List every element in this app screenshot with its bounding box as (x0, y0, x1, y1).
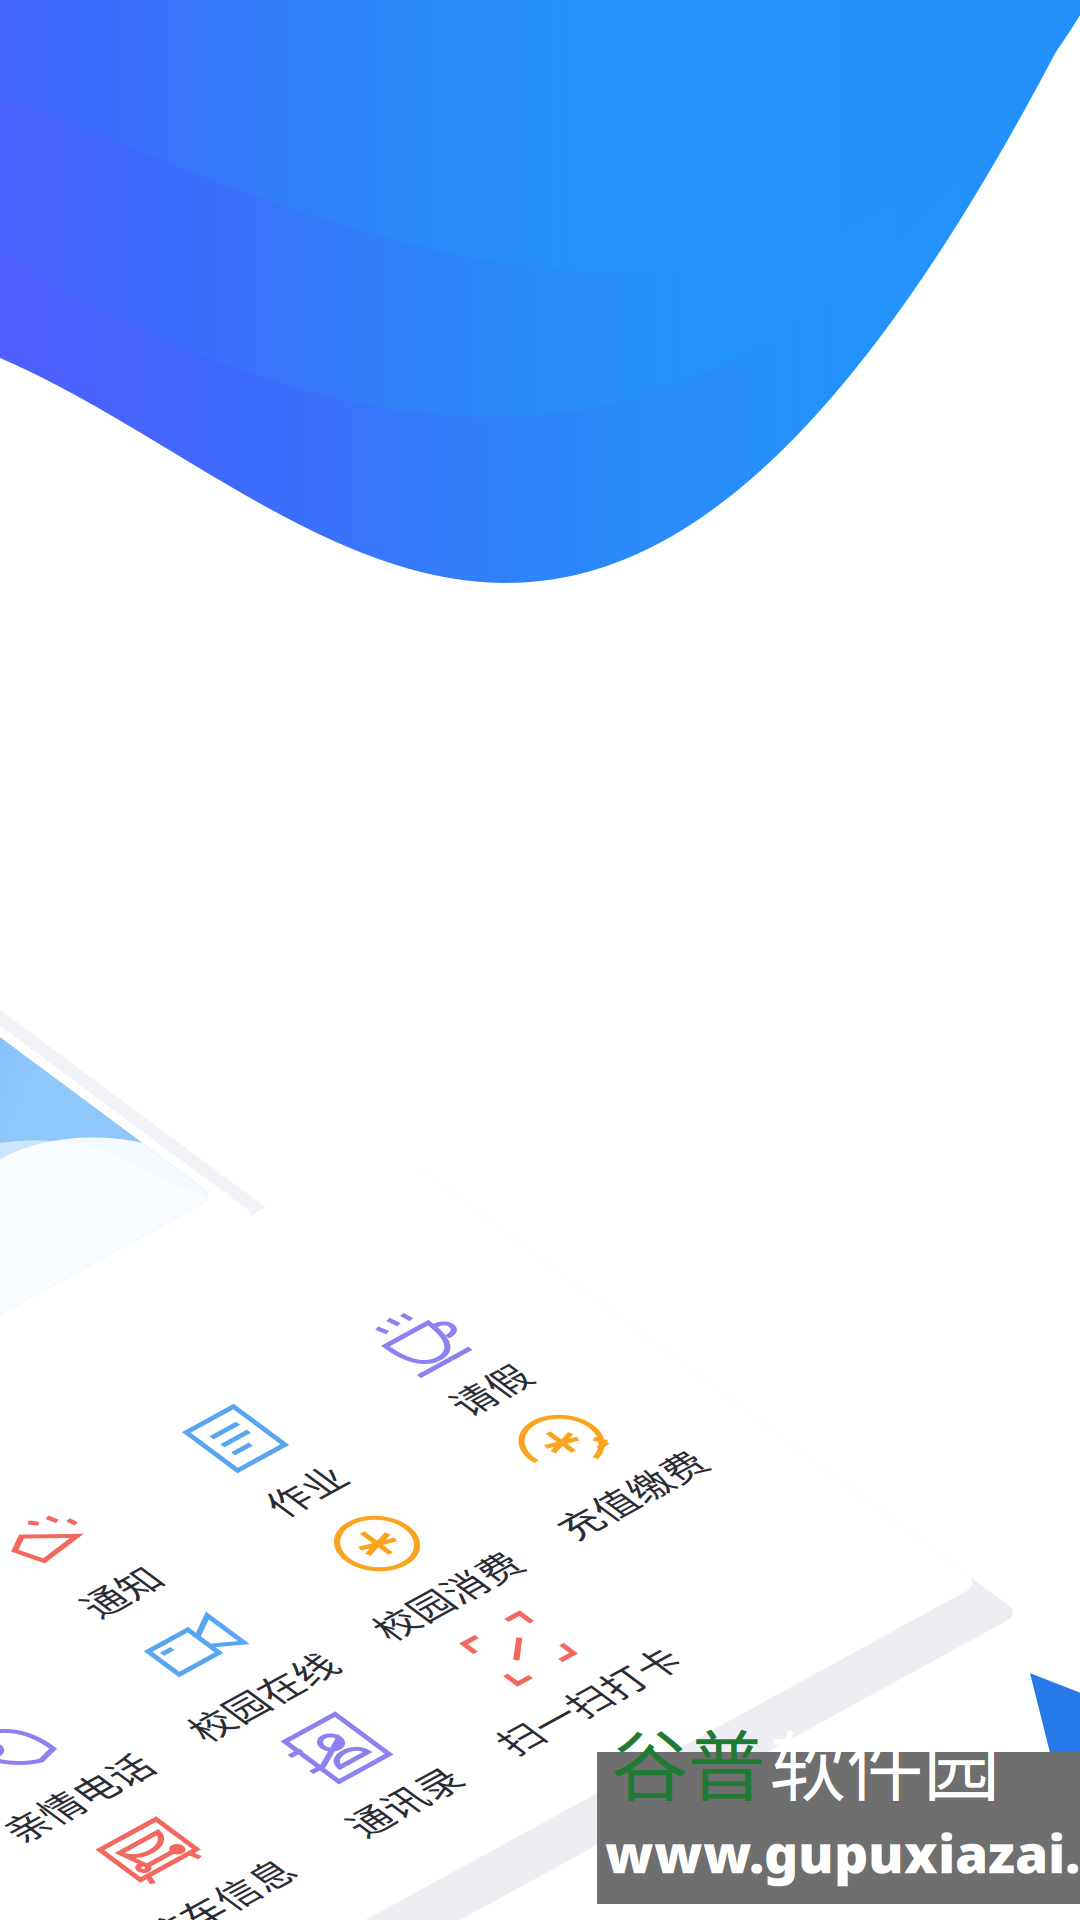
button[interactable]: 亲情电话 (0, 176, 210, 352)
button[interactable]: 通知 (210, 0, 420, 176)
staticText: www.gupuxiazai.com (605, 1817, 1080, 1920)
staticText: 通讯录 (256, 462, 373, 518)
button[interactable]: 校园在线 (210, 176, 420, 352)
staticText: 扫一扫打卡 (427, 462, 622, 518)
button[interactable]: 通讯录 (0, 0, 210, 176)
staticText: 通讯录 (46, 110, 163, 166)
button[interactable]: 校园消费 (420, 176, 630, 352)
button[interactable]: 校车信息 (0, 352, 210, 528)
staticText: 校园在线 (237, 286, 393, 342)
staticText: 谷普 (611, 1705, 765, 1817)
staticText: 软件园 (769, 1705, 1000, 1817)
button[interactable]: 扫一扫打卡 (420, 352, 630, 528)
staticText: 亲情电话 (27, 286, 183, 342)
button[interactable]: 通讯录 (210, 352, 420, 528)
